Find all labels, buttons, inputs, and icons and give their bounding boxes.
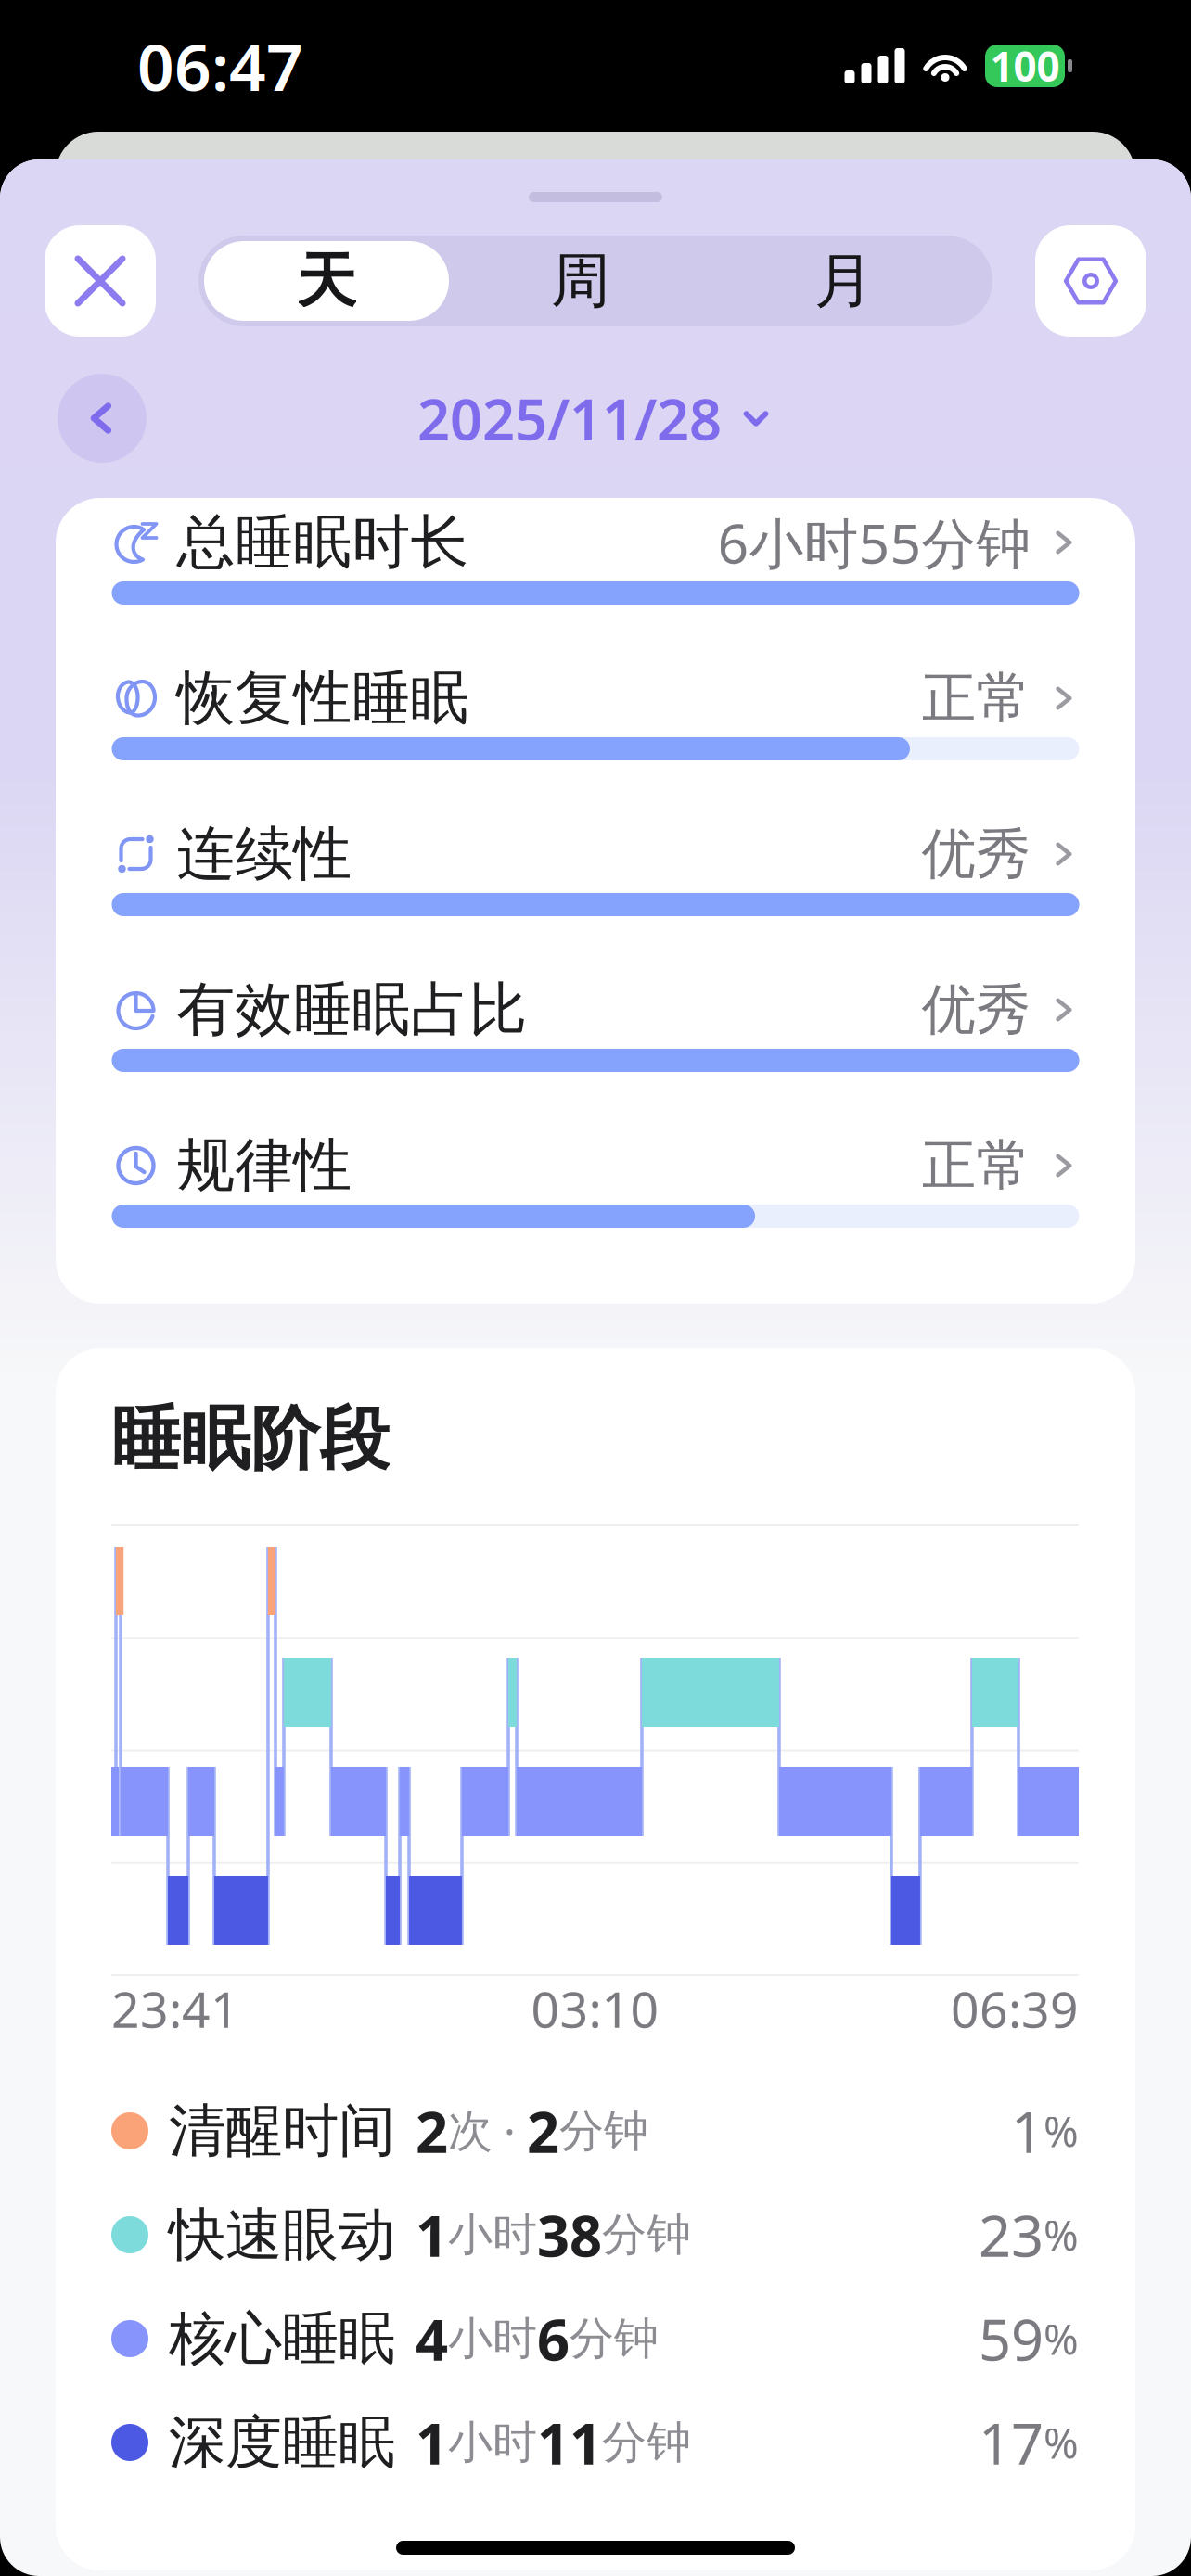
staticText: 2 bbox=[416, 2093, 448, 2169]
staticText: · bbox=[493, 2101, 527, 2160]
staticText: 次 bbox=[448, 2104, 493, 2158]
button[interactable]: 规律性 bbox=[112, 1141, 1079, 1228]
staticText: 11 bbox=[537, 2405, 602, 2480]
staticText: 清醒时间 bbox=[169, 2096, 395, 2166]
staticText: 2 bbox=[527, 2093, 559, 2169]
staticText: 快速眼动 bbox=[169, 2200, 395, 2270]
button[interactable]: 有效睡眠占比 bbox=[112, 986, 1079, 1072]
staticText: 总睡眠时长 bbox=[177, 507, 469, 578]
staticText: 6小时55分钟 bbox=[717, 506, 1031, 579]
staticText: 2025/11/28 bbox=[417, 380, 722, 456]
staticText: 小时 bbox=[448, 2207, 537, 2262]
button[interactable]: 总睡眠时长 bbox=[112, 518, 1079, 605]
staticText: % bbox=[1044, 2415, 1079, 2470]
staticText: 分钟 bbox=[602, 2415, 691, 2470]
staticText: 深度睡眠 bbox=[169, 2408, 395, 2477]
staticText: 正常 bbox=[922, 1132, 1031, 1199]
staticText: 周 bbox=[551, 245, 610, 317]
staticText: 有效睡眠占比 bbox=[177, 974, 527, 1046]
staticText: 4 bbox=[416, 2301, 448, 2376]
staticText: 核心睡眠 bbox=[169, 2304, 395, 2373]
staticText: 天 bbox=[297, 245, 356, 317]
staticText: 分钟 bbox=[602, 2207, 691, 2262]
staticText: 1 bbox=[1011, 2093, 1044, 2169]
staticText: 正常 bbox=[922, 665, 1031, 732]
staticText: 100 bbox=[990, 39, 1060, 93]
staticText: 1 bbox=[416, 2197, 448, 2272]
staticText: 规律性 bbox=[177, 1130, 352, 1201]
staticText: 06:47 bbox=[137, 23, 303, 109]
staticText: % bbox=[1044, 2207, 1079, 2263]
staticText: 23 bbox=[979, 2197, 1044, 2272]
staticText: 恢复性睡眠 bbox=[177, 663, 469, 734]
button[interactable]: 2025/11/28 bbox=[417, 374, 774, 463]
staticText: 23:41 bbox=[111, 1976, 239, 2041]
button[interactable]: Previous day bbox=[58, 374, 147, 463]
button[interactable]: 连续性 bbox=[112, 830, 1079, 916]
staticText: 睡眠阶段 bbox=[111, 1397, 390, 1482]
button[interactable]: 月 bbox=[712, 241, 976, 321]
staticText: 17 bbox=[979, 2405, 1044, 2480]
staticText: % bbox=[1044, 2103, 1079, 2159]
button[interactable]: Sleep settings bbox=[1035, 225, 1146, 337]
staticText: 分钟 bbox=[570, 2311, 659, 2366]
staticText: 59 bbox=[979, 2301, 1044, 2376]
staticText: 分钟 bbox=[559, 2104, 648, 2158]
button[interactable]: Close bbox=[45, 225, 156, 337]
staticText: 1 bbox=[416, 2405, 448, 2480]
staticText: 月 bbox=[814, 245, 874, 317]
button[interactable]: 周 bbox=[449, 241, 712, 321]
staticText: 06:39 bbox=[951, 1976, 1079, 2041]
staticText: 38 bbox=[537, 2197, 602, 2272]
staticText: 小时 bbox=[448, 2415, 537, 2470]
staticText: 优秀 bbox=[922, 821, 1031, 888]
button[interactable]: 恢复性睡眠 bbox=[112, 674, 1079, 760]
staticText: 优秀 bbox=[922, 976, 1031, 1043]
staticText: 6 bbox=[537, 2301, 570, 2376]
staticText: % bbox=[1044, 2311, 1079, 2367]
button[interactable]: 天 bbox=[204, 241, 449, 321]
staticText: 连续性 bbox=[177, 818, 352, 890]
staticText: 03:10 bbox=[531, 1976, 659, 2041]
staticText: 小时 bbox=[448, 2311, 537, 2366]
